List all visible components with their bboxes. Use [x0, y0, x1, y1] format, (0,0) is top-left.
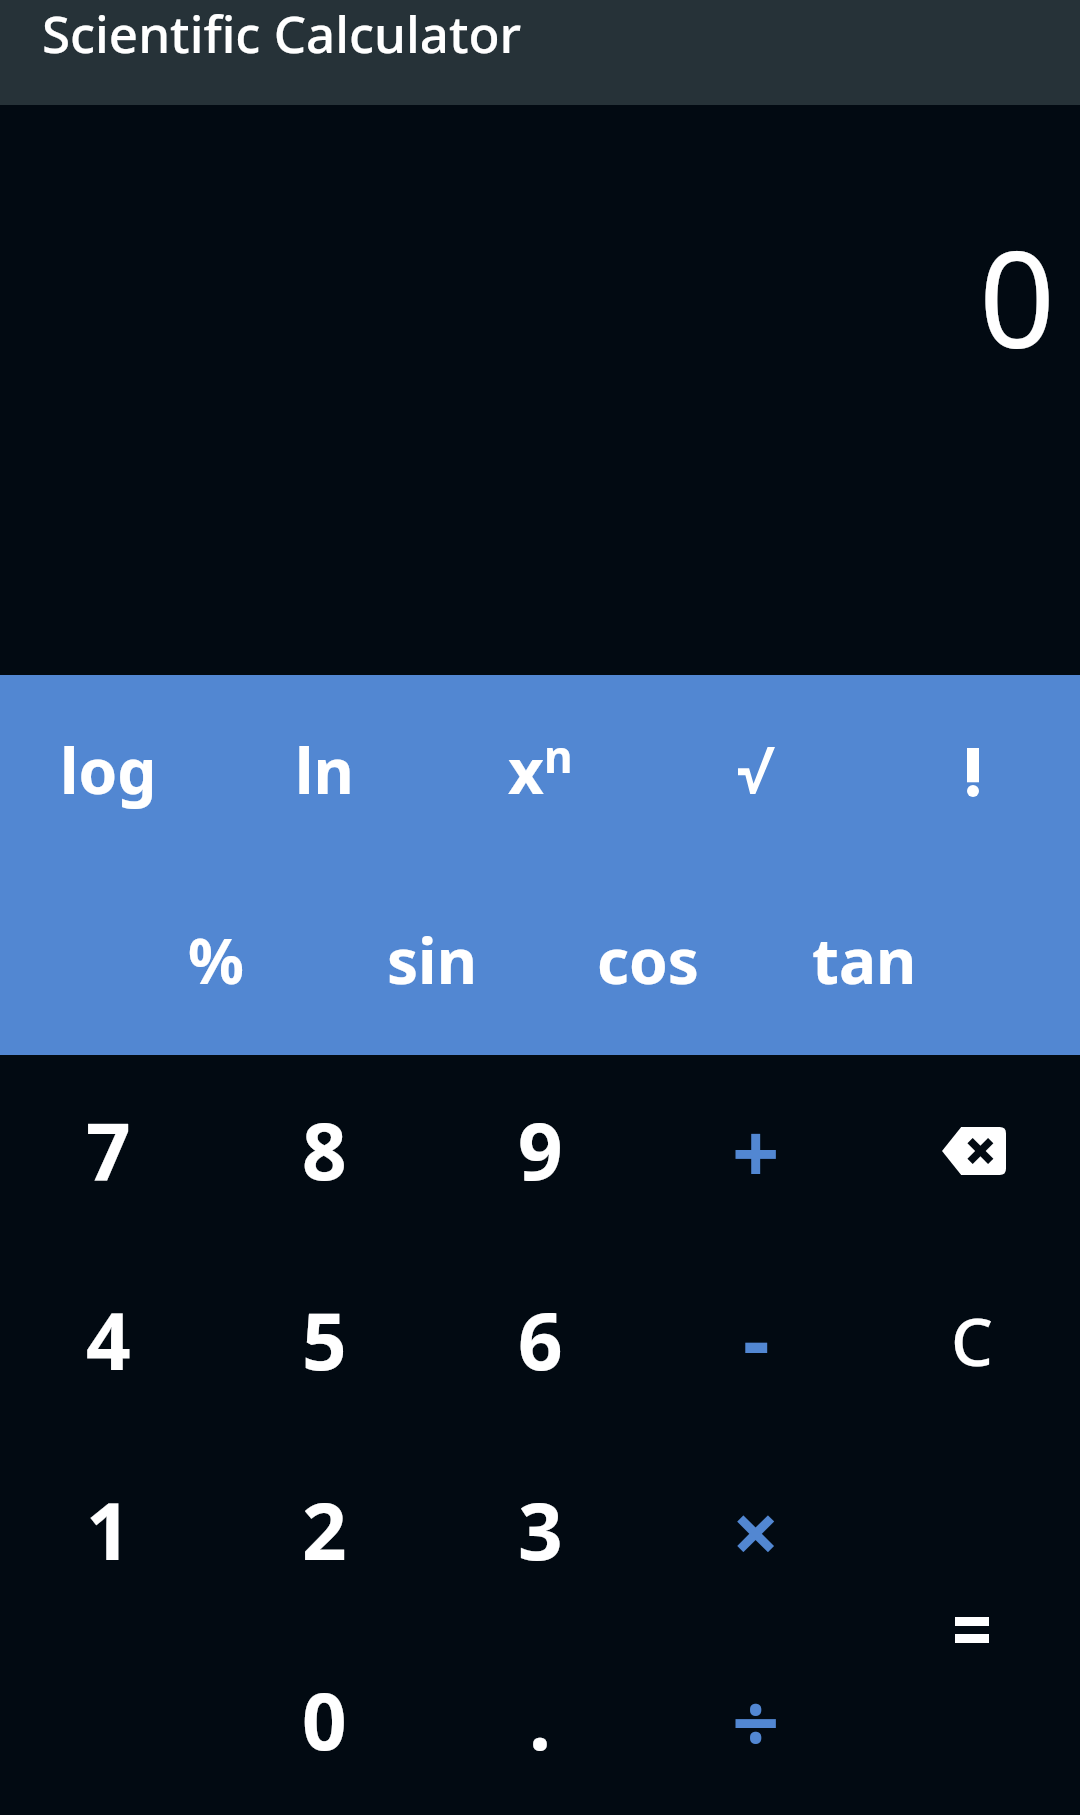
staticText: log	[60, 728, 157, 812]
staticText: 9	[518, 1097, 563, 1203]
button[interactable]: Backspace	[902, 1090, 1042, 1210]
staticText: .	[529, 1667, 551, 1773]
button[interactable]: 9	[432, 1055, 648, 1245]
staticText: 5	[302, 1287, 347, 1393]
staticText: C	[951, 1295, 993, 1385]
staticText: ÷	[732, 1664, 780, 1777]
button[interactable]: 3	[432, 1435, 648, 1625]
staticText: 4	[86, 1287, 131, 1393]
button[interactable]: ÷	[648, 1625, 864, 1815]
button[interactable]: Square root	[648, 675, 864, 865]
button[interactable]: 4	[0, 1245, 216, 1435]
button[interactable]: cos	[540, 865, 756, 1055]
staticText: tan	[812, 918, 917, 1002]
button[interactable]: Equals	[864, 1435, 1080, 1815]
staticText: 0	[979, 206, 1056, 387]
button[interactable]: -	[648, 1245, 864, 1435]
staticText: 2	[302, 1477, 347, 1583]
button[interactable]: 6	[432, 1245, 648, 1435]
button[interactable]: log	[0, 675, 216, 865]
staticText: n	[544, 726, 573, 786]
button[interactable]: Scientific Calculator	[0, 0, 1080, 105]
button[interactable]: +	[648, 1055, 864, 1245]
button[interactable]: ×	[648, 1435, 864, 1625]
button[interactable]: C	[864, 1245, 1080, 1435]
button[interactable]: sin	[324, 865, 540, 1055]
button[interactable]: 7	[0, 1055, 216, 1245]
button[interactable]: 0	[216, 1625, 432, 1815]
button[interactable]: .	[432, 1625, 648, 1815]
button[interactable]: 8	[216, 1055, 432, 1245]
staticText: +	[732, 1094, 780, 1207]
staticText: 0	[302, 1667, 347, 1773]
button[interactable]: tan	[756, 865, 972, 1055]
button[interactable]: 2	[216, 1435, 432, 1625]
button[interactable]: 1	[0, 1435, 216, 1625]
staticText: x	[508, 728, 544, 812]
button[interactable]: 5	[216, 1245, 432, 1435]
staticText: %	[188, 918, 244, 1002]
staticText: cos	[597, 918, 699, 1002]
staticText: 8	[302, 1097, 347, 1203]
button[interactable]: Power	[432, 675, 648, 865]
staticText: Scientific Calculator	[42, 0, 522, 67]
staticText: 6	[518, 1287, 563, 1393]
staticText: 7	[86, 1097, 131, 1203]
staticText: ln	[295, 728, 354, 812]
button[interactable]: Factorial	[864, 675, 1080, 865]
button[interactable]: %	[108, 865, 324, 1055]
button[interactable]: ln	[216, 675, 432, 865]
staticText: 3	[518, 1477, 563, 1583]
staticText: -	[743, 1281, 770, 1394]
staticText: 1	[86, 1477, 131, 1583]
staticText: ×	[732, 1474, 780, 1587]
staticText: sin	[387, 918, 477, 1002]
